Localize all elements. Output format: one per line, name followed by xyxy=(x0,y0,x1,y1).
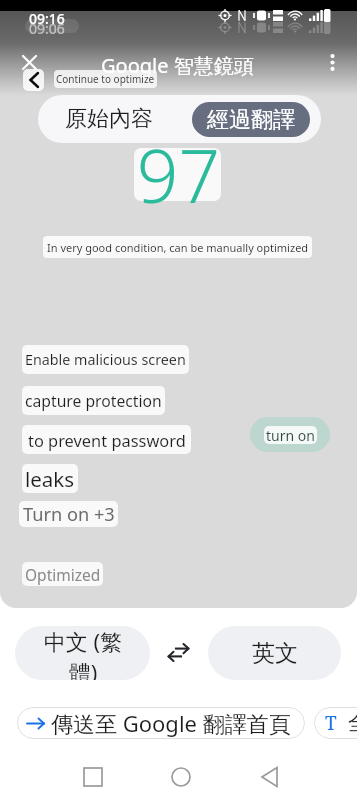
staticText: 全 xyxy=(348,710,357,736)
button[interactable]: More options xyxy=(320,50,344,74)
button[interactable]: Close xyxy=(19,52,39,72)
button[interactable]: Back xyxy=(23,69,44,91)
staticText: 中文 (繁體) xyxy=(41,626,125,680)
staticText: Continue to optimize xyxy=(56,72,155,86)
staticText: 經過翻譯 xyxy=(207,106,295,134)
staticText: to prevent password xyxy=(28,429,186,451)
staticText: Turn on +3 xyxy=(23,502,115,527)
button[interactable]: 原始內容 xyxy=(38,95,179,143)
button[interactable]: 英文 xyxy=(208,626,341,680)
staticText: 97 xyxy=(135,125,222,224)
staticText: Enable malicious screen xyxy=(25,350,186,369)
button[interactable]: T xyxy=(314,707,357,739)
button[interactable]: 傳送至 Google 翻譯首頁 xyxy=(17,707,305,739)
staticText: Google 智慧鏡頭 xyxy=(101,52,254,79)
button[interactable]: 經過翻譯 xyxy=(192,102,310,137)
button[interactable]: turn on xyxy=(250,417,330,452)
staticText: leaks xyxy=(25,465,75,493)
button[interactable]: 中文 (繁體) xyxy=(15,626,150,680)
staticText: Optimized xyxy=(25,564,101,585)
staticText: 英文 xyxy=(252,639,298,668)
staticText: 09:06 xyxy=(29,19,65,38)
staticText: In very good condition, can be manually … xyxy=(47,240,309,255)
staticText: 傳送至 Google 翻譯首頁 xyxy=(51,708,291,738)
button[interactable]: Swap languages xyxy=(163,638,193,666)
staticText: turn on xyxy=(266,426,315,444)
staticText: 原始內容 xyxy=(65,105,153,133)
staticText: capture protection xyxy=(25,390,162,411)
staticText: T xyxy=(325,710,337,736)
staticText: 09:16 xyxy=(29,9,65,28)
